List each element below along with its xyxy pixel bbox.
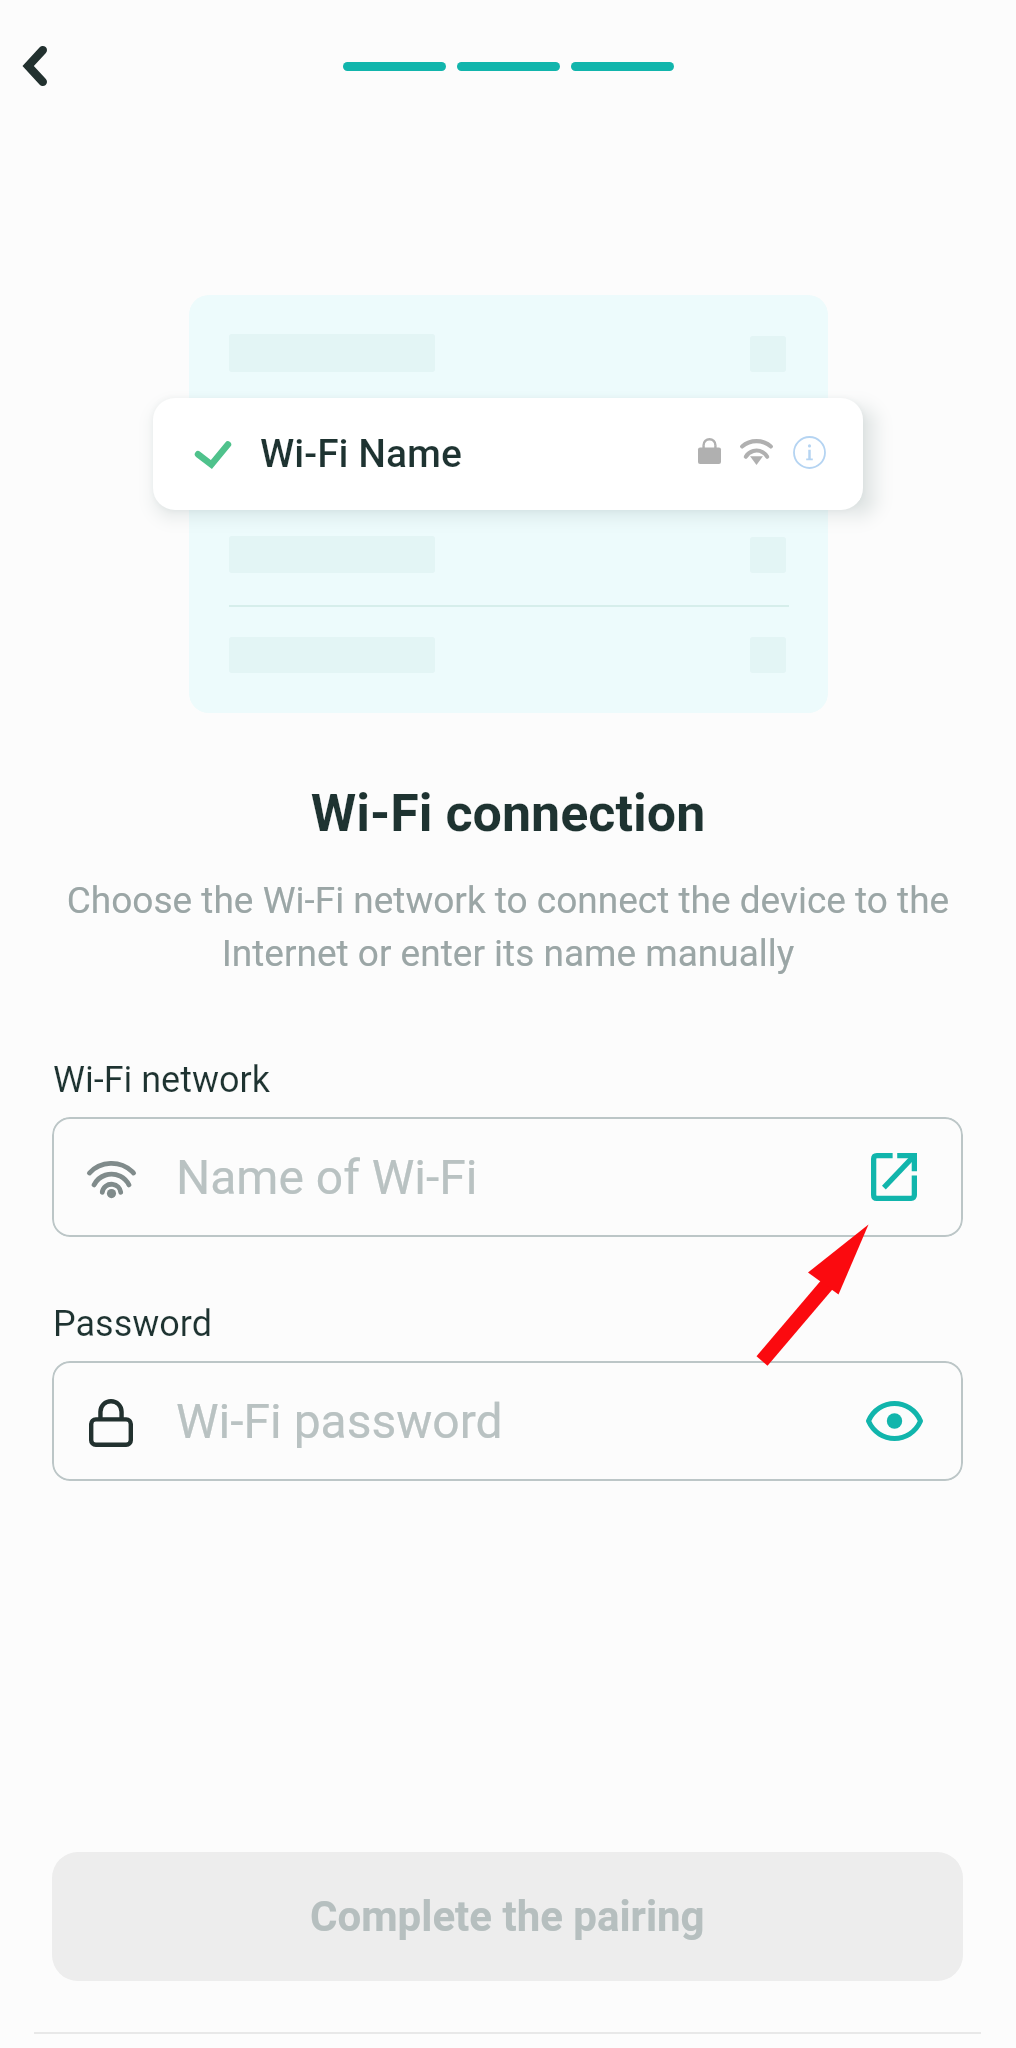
button[interactable]: Wi-Fi password bbox=[52, 1361, 963, 1481]
staticText: Wi-Fi Name bbox=[260, 431, 462, 477]
button[interactable]: Open Wi-Fi settings bbox=[858, 1141, 930, 1213]
staticText: Wi-Fi network bbox=[53, 1059, 271, 1101]
button[interactable]: Show password bbox=[858, 1385, 930, 1457]
staticText: Complete the pairing bbox=[310, 1892, 705, 1941]
staticText: Name of Wi-Fi bbox=[176, 1149, 478, 1205]
button[interactable]: Complete the pairing bbox=[52, 1852, 963, 1981]
staticText: Wi-Fi password bbox=[176, 1393, 503, 1449]
staticText: Wi-Fi connection bbox=[0, 783, 1016, 844]
staticText: Password bbox=[53, 1303, 213, 1345]
button[interactable]: Wi-Fi Name bbox=[153, 398, 863, 510]
button[interactable]: Name of Wi-Fi bbox=[52, 1117, 963, 1237]
button[interactable]: Back bbox=[0, 12, 89, 120]
staticText: Choose the Wi-Fi network to connect the … bbox=[60, 879, 956, 975]
